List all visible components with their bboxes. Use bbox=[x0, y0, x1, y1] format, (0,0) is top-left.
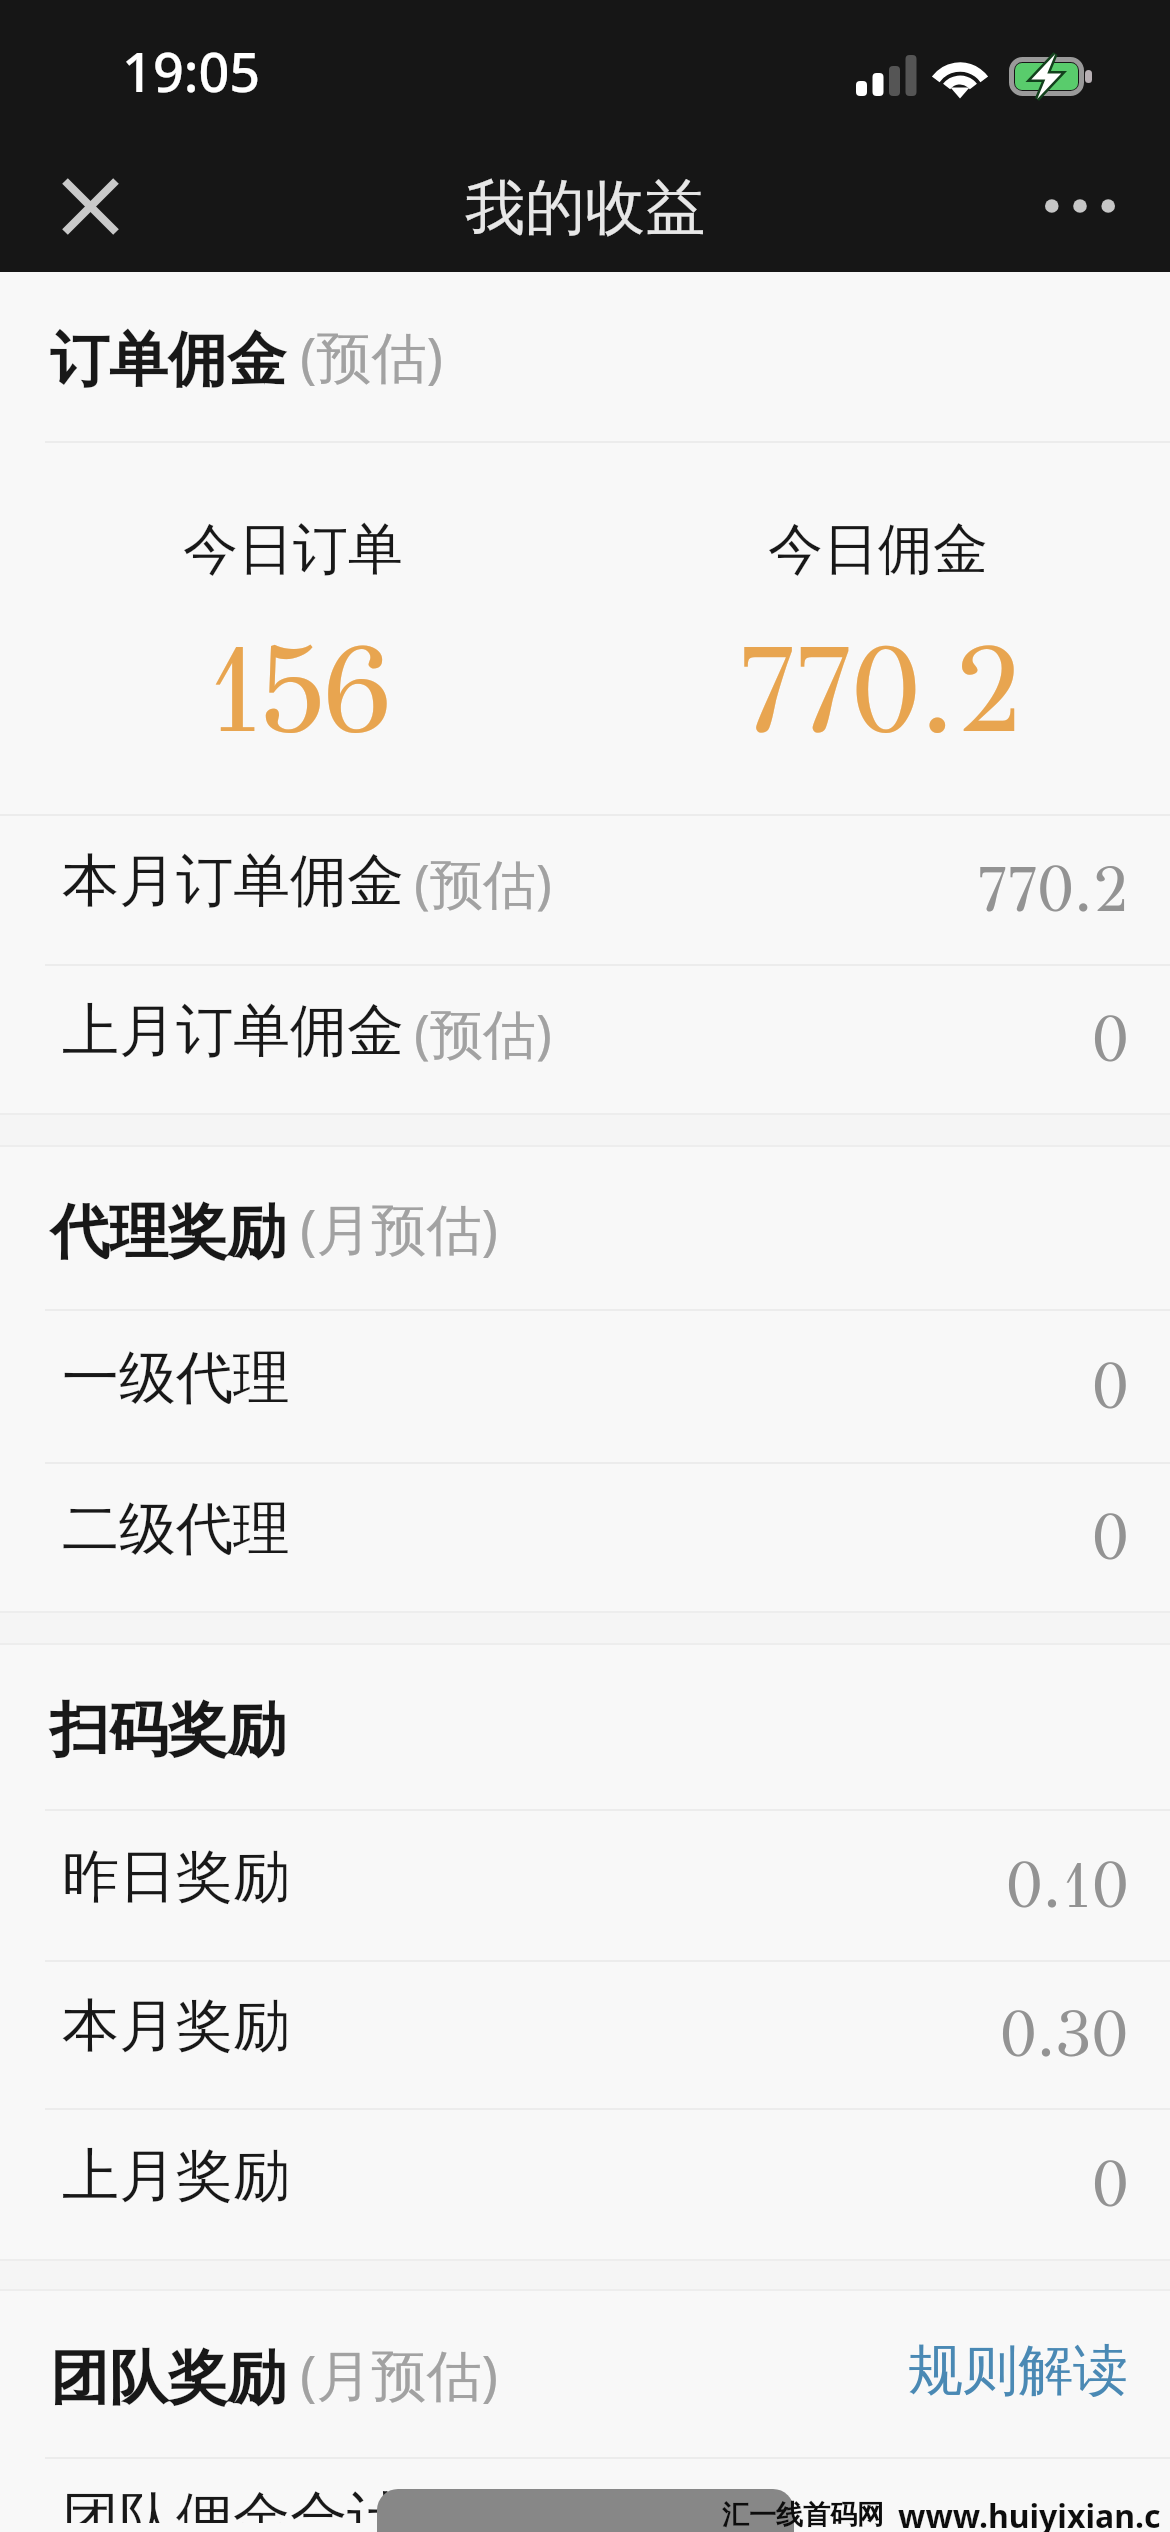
staticText: (月预估) bbox=[300, 2336, 499, 2411]
staticText: 0.10 bbox=[1006, 1846, 1129, 1924]
button[interactable]: 本月奖励 bbox=[0, 1962, 1170, 2108]
staticText: 0 bbox=[1092, 1498, 1129, 1576]
staticText: 昨日奖励 bbox=[62, 1841, 290, 1913]
staticText: www.huiyixian.com bbox=[898, 2494, 1170, 2532]
staticText: 本月订单佣金 bbox=[62, 845, 404, 917]
staticText: 代理奖励 bbox=[50, 1195, 286, 1269]
staticText: 规则解读 bbox=[908, 2336, 1128, 2405]
staticText: 上月订单佣金 bbox=[62, 995, 404, 1067]
staticText: 今日订单 bbox=[183, 515, 403, 584]
button[interactable]: 上月奖励 bbox=[0, 2110, 1170, 2259]
staticText: 770.2 bbox=[738, 615, 1023, 764]
staticText: 一级代理 bbox=[62, 1342, 290, 1414]
staticText: 订单佣金 bbox=[50, 323, 286, 397]
button[interactable]: 上月订单佣金 bbox=[0, 966, 1170, 1113]
staticText: 上月奖励 bbox=[62, 2140, 290, 2212]
button[interactable]: 本月订单佣金 bbox=[0, 816, 1170, 964]
staticText: (预估) bbox=[300, 318, 444, 393]
staticText: 今日佣金 bbox=[768, 515, 988, 584]
staticText: (预估) bbox=[414, 996, 552, 1068]
staticText: 我的收益 bbox=[465, 170, 705, 246]
staticText: (月预估) bbox=[300, 1190, 499, 1265]
button[interactable]: 今日佣金 bbox=[585, 443, 1170, 814]
button[interactable]: 今日订单 bbox=[0, 443, 585, 814]
staticText: 19:05 bbox=[122, 34, 261, 108]
button[interactable]: More options bbox=[1022, 154, 1138, 258]
staticText: 本月奖励 bbox=[62, 1990, 290, 2062]
staticText: 156 bbox=[205, 615, 387, 764]
staticText: 团队奖励 bbox=[50, 2341, 286, 2415]
staticText: (预估) bbox=[414, 846, 552, 918]
button[interactable]: Close bbox=[33, 154, 148, 258]
button[interactable]: 一级代理 bbox=[0, 1311, 1170, 1462]
button[interactable]: 二级代理 bbox=[0, 1464, 1170, 1611]
staticText: 0 bbox=[1092, 2145, 1129, 2223]
staticText: 汇一线首码网 bbox=[722, 2498, 884, 2532]
staticText: 扫码奖励 bbox=[50, 1693, 286, 1767]
staticText: 0.30 bbox=[1000, 1995, 1129, 2073]
button[interactable]: 规则解读 bbox=[878, 2318, 1170, 2423]
staticText: 770.2 bbox=[977, 850, 1129, 928]
staticText: 0 bbox=[1092, 1000, 1129, 1078]
button[interactable]: 昨日奖励 bbox=[0, 1811, 1170, 1960]
staticText: 0 bbox=[1092, 1347, 1129, 1425]
button[interactable]: 团队佣金合计 bbox=[0, 2459, 1170, 2532]
staticText: 二级代理 bbox=[62, 1493, 290, 1565]
staticText: 团队佣金合计 bbox=[62, 2483, 404, 2523]
